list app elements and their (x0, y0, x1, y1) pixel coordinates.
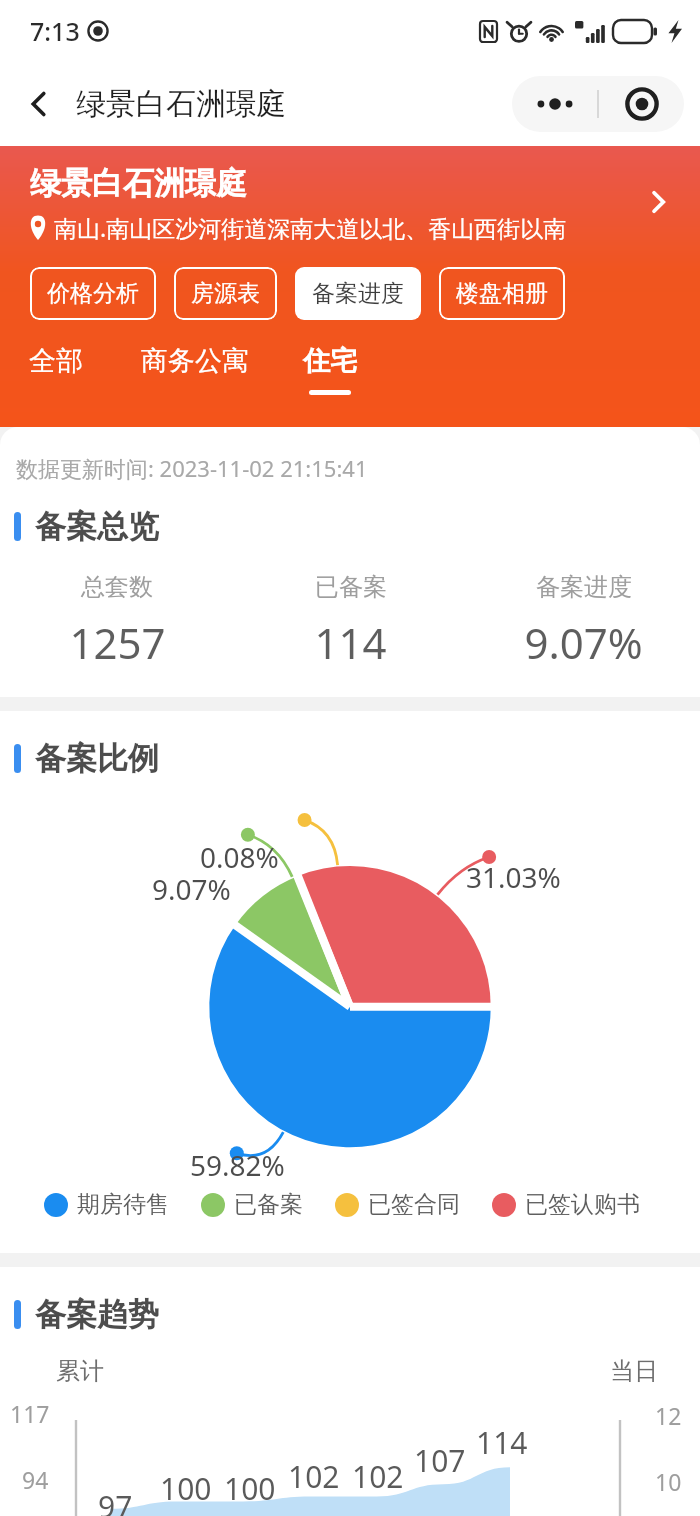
button[interactable]: 全部 (26, 344, 86, 390)
staticText: 9.07% (524, 614, 643, 671)
staticText: 备案进度 (312, 279, 404, 308)
staticText: 数据更新时间: 2023-11-02 21:15:41 (16, 453, 368, 483)
staticText: 楼盘相册 (456, 279, 548, 308)
button[interactable]: 已备案 (201, 1190, 303, 1219)
button[interactable]: 房源表 (174, 267, 277, 320)
staticText: 100 (160, 1468, 212, 1509)
button[interactable]: Open project details (636, 180, 680, 224)
button[interactable]: 价格分析 (30, 267, 156, 320)
staticText: 当日 (610, 1356, 658, 1386)
button[interactable]: Back (14, 79, 64, 129)
staticText: 59.82% (190, 1146, 285, 1184)
staticText: 期房待售 (77, 1190, 169, 1219)
button[interactable]: 已签合同 (335, 1190, 460, 1219)
button[interactable]: Target (599, 76, 684, 132)
staticText: 114 (476, 1422, 528, 1463)
staticText: 房源表 (191, 279, 260, 308)
staticText: 100 (224, 1468, 276, 1509)
staticText: 累计 (56, 1356, 104, 1386)
staticText: 备案比例 (35, 739, 159, 778)
staticText: 全部 (29, 344, 83, 378)
staticText: 1257 (69, 614, 166, 671)
button[interactable]: 备案进度 (295, 267, 421, 320)
staticText: 12 (655, 1400, 682, 1431)
staticText: 住宅 (303, 344, 357, 378)
staticText: 94 (22, 1464, 49, 1495)
staticText: 已签认购书 (525, 1190, 640, 1219)
button[interactable]: 住宅 (300, 344, 360, 395)
button[interactable]: 商务公寓 (138, 344, 252, 390)
button[interactable]: 已签认购书 (492, 1190, 640, 1219)
staticText: 31.03% (466, 858, 561, 896)
staticText: 97 (98, 1486, 133, 1516)
staticText: 已签合同 (368, 1190, 460, 1219)
staticText: 10 (655, 1466, 682, 1497)
staticText: 总套数 (81, 572, 153, 602)
staticText: 绿景白石洲璟庭 (30, 164, 247, 203)
staticText: 南山.南山区沙河街道深南大道以北、香山西街以南 (54, 212, 567, 243)
button[interactable]: 楼盘相册 (439, 267, 565, 320)
staticText: 价格分析 (47, 279, 139, 308)
staticText: 已备案 (234, 1190, 303, 1219)
staticText: 0.08% (200, 838, 279, 876)
button[interactable]: 期房待售 (44, 1190, 169, 1219)
staticText: 备案总览 (35, 507, 159, 546)
staticText: 114 (314, 614, 387, 671)
staticText: 备案进度 (536, 572, 632, 602)
staticText: 102 (288, 1456, 340, 1497)
staticText: 商务公寓 (141, 344, 249, 378)
staticText: 117 (10, 1398, 50, 1429)
staticText: 绿景白石洲璟庭 (76, 85, 286, 123)
staticText: 9.07% (152, 870, 231, 908)
staticText: 102 (352, 1456, 404, 1497)
button[interactable]: More options (512, 76, 597, 132)
staticText: 107 (414, 1440, 466, 1481)
staticText: 已备案 (315, 572, 387, 602)
staticText: 备案趋势 (35, 1295, 159, 1334)
staticText: 7:13 (30, 14, 80, 48)
